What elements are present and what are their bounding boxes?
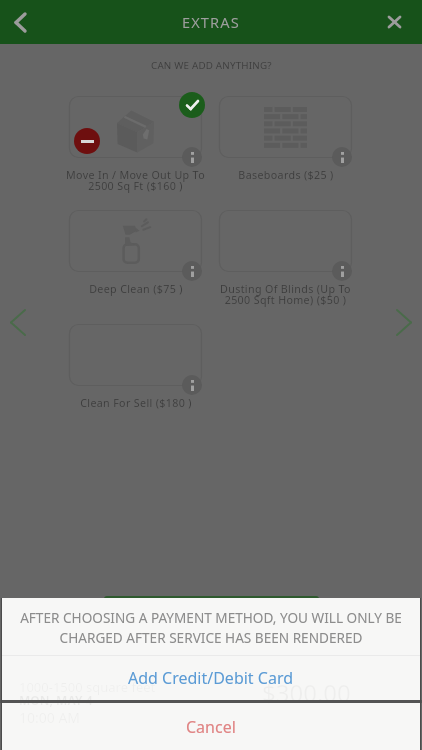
staticText: Dusting Of Blinds (Up To 2500 Sqft Home)… (220, 282, 351, 307)
button[interactable] (69, 210, 202, 272)
button[interactable]: More info (332, 261, 352, 281)
button[interactable]: Remove (74, 128, 100, 154)
button[interactable]: More info (332, 147, 352, 167)
staticText: CAN WE ADD ANYTHING? (151, 59, 272, 72)
staticText: MON, MAY 4 (19, 692, 93, 708)
button[interactable]: Back (2, 4, 38, 40)
button[interactable] (219, 96, 352, 158)
button[interactable]: Cancel (2, 703, 420, 750)
staticText: AFTER CHOOSING A PAYMENT METHOD, YOU WIL… (20, 608, 402, 647)
button[interactable]: Selected (179, 92, 205, 118)
staticText: $300.00 (262, 676, 351, 709)
staticText: Move In / Move Out Up To 2500 Sq Ft ($16… (66, 168, 205, 193)
button[interactable]: More info (182, 147, 202, 167)
button[interactable]: Add Credit/Debit Card (2, 656, 420, 700)
button[interactable] (69, 96, 202, 158)
button[interactable]: More info (182, 261, 202, 281)
button[interactable]: More info (182, 375, 202, 395)
button[interactable]: Next page (389, 307, 419, 338)
button[interactable]: Close (382, 10, 406, 34)
staticText: Clean For Sell ($180 ) (80, 396, 192, 411)
staticText: Cancel (186, 716, 236, 738)
staticText: Baseboards ($25 ) (238, 168, 334, 183)
button[interactable]: Previous page (3, 307, 33, 338)
staticText: EXTRAS (182, 12, 240, 32)
staticText: Deep Clean ($75 ) (89, 282, 183, 297)
staticText: 1000-1500 square feet (19, 678, 156, 696)
staticText: Add Credit/Debit Card (128, 667, 294, 689)
